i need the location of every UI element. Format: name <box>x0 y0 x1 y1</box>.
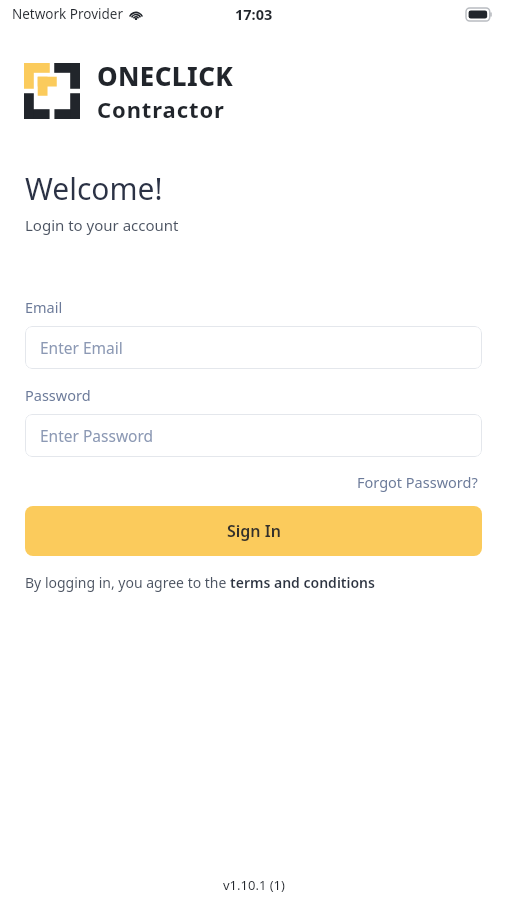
button[interactable]: By logging in, you agree to the terms an… <box>25 573 375 592</box>
staticText: Email <box>25 297 63 317</box>
staticText: 17:03 <box>235 4 273 24</box>
staticText: Sign In <box>227 520 281 542</box>
staticText: Contractor <box>97 94 225 124</box>
button[interactable]: Enter Password <box>25 414 482 457</box>
button[interactable]: Enter Email <box>25 326 482 369</box>
staticText: Password <box>25 385 91 405</box>
staticText: v1.10.1 (1) <box>223 876 285 894</box>
staticText: ONECLICK <box>97 58 234 93</box>
button[interactable]: Forgot Password? <box>353 468 482 496</box>
staticText: Login to your account <box>25 215 179 235</box>
staticText: Welcome! <box>25 168 163 209</box>
staticText: Enter Email <box>40 337 123 358</box>
button[interactable]: Sign In <box>25 506 482 556</box>
staticText: Network Provider <box>12 5 124 23</box>
staticText: Enter Password <box>40 425 154 446</box>
